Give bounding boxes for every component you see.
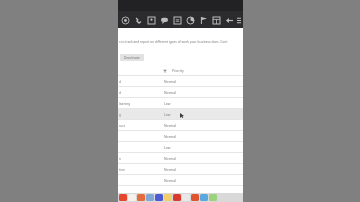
button[interactable]: Normal — [118, 175, 243, 186]
staticText: Low — [164, 145, 171, 150]
staticText: Normal — [164, 134, 176, 139]
button[interactable]: Dock app — [173, 194, 181, 201]
staticText: Normal — [164, 90, 176, 95]
staticText: n — [119, 157, 121, 161]
staticText: Normal — [164, 167, 176, 172]
staticText: leaning — [119, 102, 131, 106]
button[interactable]: Low — [118, 142, 243, 153]
button[interactable]: Dock app — [191, 194, 199, 201]
staticText: Normal — [164, 156, 176, 161]
staticText: Normal — [164, 79, 176, 84]
staticText: Normal — [164, 123, 176, 128]
button[interactable]: Dock app — [164, 194, 172, 201]
button[interactable]: Dock app — [128, 194, 136, 201]
staticText: g — [119, 113, 121, 117]
staticText: tion — [119, 168, 125, 172]
staticText: Deactivate — [124, 56, 140, 60]
button[interactable]: Normal — [118, 131, 243, 142]
button[interactable]: g — [118, 109, 243, 120]
button[interactable]: Dock app — [137, 194, 145, 201]
button[interactable]: Reports — [185, 15, 196, 26]
button[interactable]: leaning — [118, 98, 243, 109]
button[interactable]: Call — [133, 15, 144, 26]
staticText: Low — [164, 101, 171, 106]
button[interactable]: n — [118, 153, 243, 164]
button[interactable]: tion — [118, 164, 243, 175]
button[interactable]: Messages — [159, 15, 170, 26]
button[interactable]: Calendar — [211, 15, 222, 26]
staticText: s to track and report on different types… — [119, 40, 228, 44]
staticText: d — [119, 91, 121, 95]
button[interactable]: Dock app — [119, 194, 127, 201]
button[interactable]: d — [118, 87, 243, 98]
staticText: ruct — [119, 124, 125, 128]
button[interactable]: Flag — [198, 15, 209, 26]
button[interactable]: Deactivate — [120, 54, 144, 61]
button[interactable]: Documents — [172, 15, 183, 26]
button[interactable]: Sort — [118, 65, 243, 76]
staticText: d — [119, 80, 121, 84]
button[interactable]: Send — [224, 15, 235, 26]
other: Sort — [162, 68, 167, 73]
button[interactable]: Dock app — [155, 194, 163, 201]
button[interactable]: Contacts — [146, 15, 157, 26]
staticText: Low — [164, 112, 171, 117]
button[interactable]: ruct — [118, 120, 243, 131]
button[interactable]: Dock app — [146, 194, 154, 201]
button[interactable]: List — [237, 15, 241, 26]
staticText: Priority — [172, 68, 184, 73]
staticText: Normal — [164, 178, 176, 183]
button[interactable]: Dock app — [200, 194, 208, 201]
button[interactable]: d — [118, 76, 243, 87]
button[interactable]: Dock app — [209, 194, 217, 201]
button[interactable]: Home — [120, 15, 131, 26]
